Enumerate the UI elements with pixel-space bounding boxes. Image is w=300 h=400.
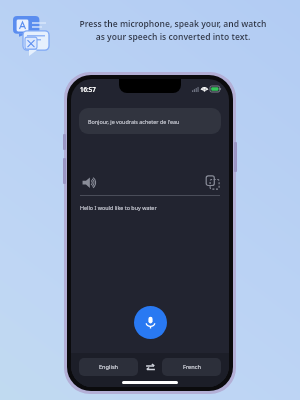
staticText: English <box>99 363 119 371</box>
button[interactable]: French <box>162 358 221 376</box>
staticText: French <box>183 363 201 371</box>
button[interactable]: Play audio <box>80 174 97 191</box>
button[interactable]: Swap languages <box>138 358 162 376</box>
staticText: 16:57 <box>80 85 96 93</box>
button[interactable]: Microphone <box>134 306 167 339</box>
button[interactable]: English <box>79 358 138 376</box>
button[interactable]: Bonjour, je voudrais acheter de l'eau <box>79 108 221 134</box>
staticText: Press the microphone, speak your, and wa… <box>58 18 288 43</box>
staticText: Bonjour, je voudrais acheter de l'eau <box>88 118 180 125</box>
staticText: Hello I would like to buy water <box>80 204 157 211</box>
button[interactable]: Copy <box>205 175 220 190</box>
